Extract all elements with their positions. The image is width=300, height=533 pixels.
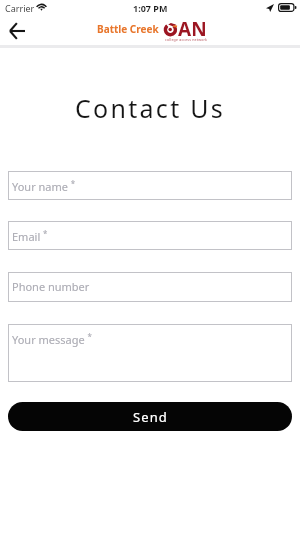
staticText: 1:07 PM bbox=[133, 2, 168, 14]
staticText: college access network bbox=[165, 37, 208, 42]
button[interactable]: Phone number bbox=[8, 272, 292, 302]
staticText: Phone number bbox=[12, 279, 90, 294]
staticText: Battle Creek bbox=[97, 22, 159, 36]
button[interactable]: Your name * bbox=[8, 171, 292, 200]
staticText: Contact Us bbox=[0, 91, 300, 125]
button[interactable]: Send bbox=[8, 402, 292, 431]
staticText: Your name * bbox=[12, 178, 76, 194]
staticText: AN bbox=[178, 16, 207, 42]
button[interactable]: Your message * bbox=[8, 324, 292, 382]
staticText: Your message * bbox=[12, 331, 92, 347]
staticText: Carrier bbox=[5, 2, 35, 14]
button[interactable]: Back bbox=[4, 18, 30, 44]
staticText: Send bbox=[133, 408, 168, 426]
staticText: Email * bbox=[12, 228, 48, 244]
button[interactable]: Email * bbox=[8, 221, 292, 250]
